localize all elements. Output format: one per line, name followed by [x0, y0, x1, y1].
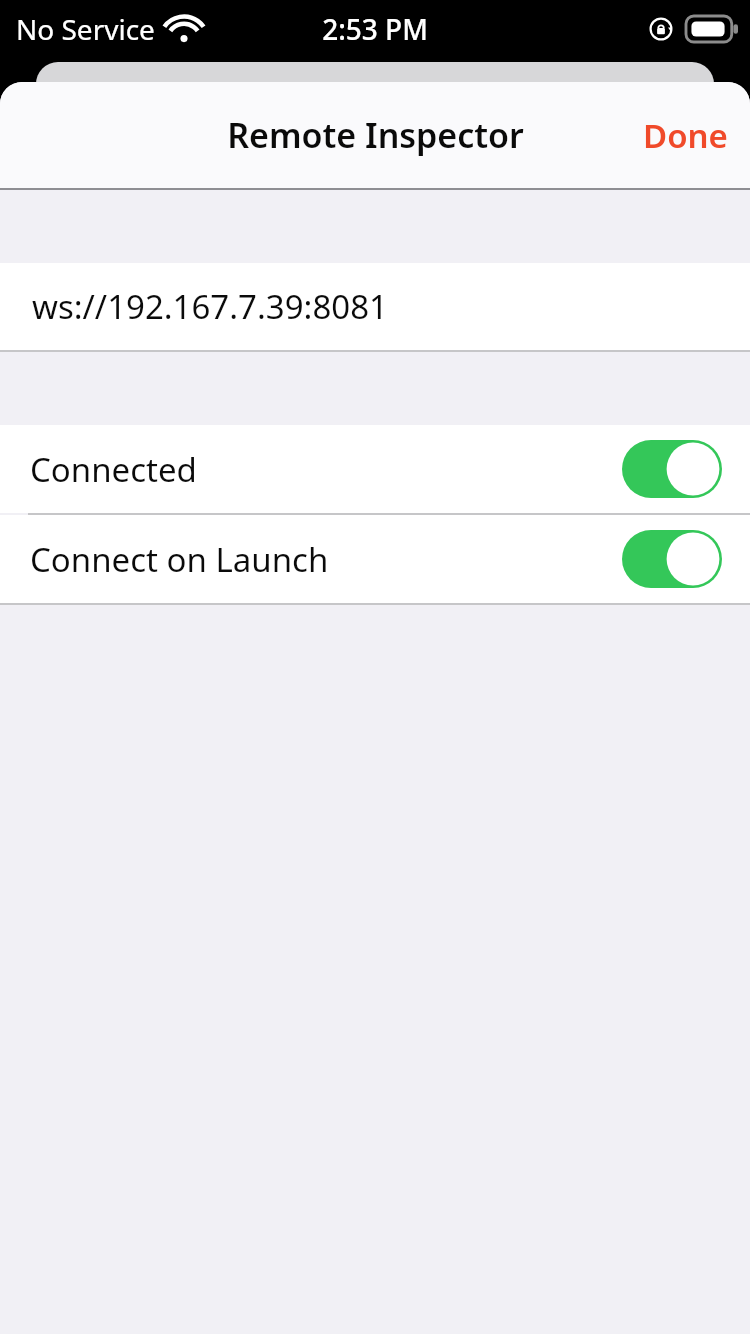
staticText: Connected — [30, 447, 197, 492]
staticText: Done — [643, 113, 728, 158]
button[interactable]: Connected — [0, 425, 750, 513]
staticText: ws://192.167.7.39:8081 — [32, 284, 388, 329]
other: Battery — [686, 16, 738, 42]
staticText: Connect on Launch — [30, 537, 329, 582]
button[interactable]: ws://192.167.7.39:8081 — [0, 263, 750, 350]
staticText: Remote Inspector — [227, 112, 524, 158]
button[interactable]: Toggle on — [622, 440, 722, 498]
button[interactable]: Connect on Launch — [0, 515, 750, 603]
button[interactable]: Toggle on — [622, 530, 722, 588]
staticText: No Service — [16, 10, 155, 48]
staticText: 2:53 PM — [322, 10, 428, 48]
other: Rotation lock — [648, 16, 674, 42]
button[interactable]: Done — [621, 97, 750, 174]
